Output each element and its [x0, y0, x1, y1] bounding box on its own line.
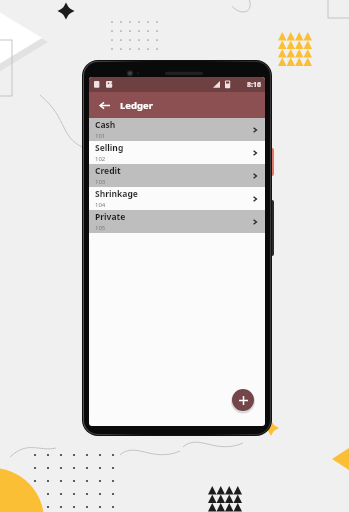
- staticText: Ledger: [120, 99, 153, 112]
- button[interactable]: Back: [95, 96, 113, 114]
- button[interactable]: Private: [89, 210, 265, 233]
- staticText: Cash: [95, 119, 116, 131]
- staticText: 104: [95, 201, 106, 209]
- button[interactable]: Add ledger: [232, 389, 254, 411]
- staticText: 101: [95, 132, 106, 140]
- staticText: 103: [95, 178, 106, 186]
- staticText: Credit: [95, 165, 121, 177]
- staticText: Shrinkage: [95, 188, 138, 200]
- staticText: 102: [95, 155, 106, 163]
- button[interactable]: Selling: [89, 141, 265, 164]
- staticText: Private: [95, 211, 126, 223]
- button[interactable]: Cash: [89, 118, 265, 141]
- staticText: 8:16: [247, 80, 261, 90]
- staticText: 105: [95, 224, 106, 232]
- button[interactable]: Credit: [89, 164, 265, 187]
- staticText: Selling: [95, 142, 124, 154]
- button[interactable]: Shrinkage: [89, 187, 265, 210]
